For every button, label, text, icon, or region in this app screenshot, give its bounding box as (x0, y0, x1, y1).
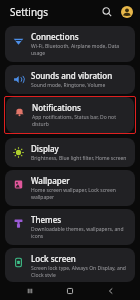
button[interactable]: Back (100, 282, 122, 300)
button[interactable]: Search (100, 5, 114, 19)
staticText: Settings (10, 5, 49, 19)
button[interactable]: Recent apps (19, 282, 41, 300)
staticText: Brightness, Blue light filter, Home scre… (31, 155, 127, 162)
staticText: Sound mode, Ringtone, Volume (31, 82, 106, 89)
button[interactable]: Notifications (6, 97, 134, 133)
staticText: Connections (31, 31, 79, 42)
button[interactable]: Wallpaper (5, 170, 135, 206)
staticText: Notifications (32, 102, 81, 113)
button[interactable]: Display (5, 138, 135, 167)
button[interactable]: Sounds and vibration (5, 65, 135, 94)
staticText: Sounds and vibration (31, 70, 113, 81)
button[interactable]: Lock screen (5, 248, 135, 282)
button[interactable]: Account (120, 5, 134, 19)
staticText: Screen lock type, Always On Display, and… (31, 265, 130, 277)
staticText: Wi-Fi, Bluetooth, Airplane mode, Data us… (31, 43, 130, 57)
staticText: Lock screen (31, 253, 76, 264)
staticText: Downloadable themes, wallpapers, and ico… (31, 226, 130, 240)
button[interactable]: Home (59, 282, 81, 300)
staticText: Display (31, 143, 59, 154)
staticText: App notifications, Status bar, Do not di… (32, 114, 129, 128)
button[interactable]: Connections (5, 26, 135, 62)
staticText: Themes (31, 214, 62, 225)
staticText: Wallpaper (31, 175, 70, 186)
button[interactable]: Themes (5, 209, 135, 245)
staticText: Home screen wallpaper, Lock screen wallp… (31, 187, 130, 201)
